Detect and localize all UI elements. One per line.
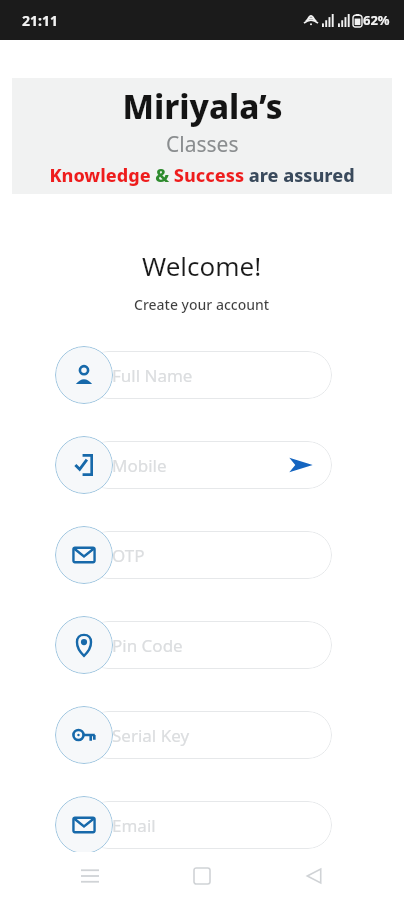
staticText: Miriyala’s	[122, 84, 283, 129]
button[interactable]: Full Name	[84, 351, 332, 399]
button[interactable]: Send OTP	[284, 448, 318, 482]
button[interactable]: Email	[55, 796, 113, 854]
button[interactable]: Mobile	[55, 436, 113, 494]
staticText: Serial Key	[112, 724, 190, 747]
staticText: 62%	[363, 11, 390, 29]
button[interactable]: Home	[180, 854, 224, 898]
button[interactable]: OTP	[55, 526, 113, 584]
button[interactable]: Serial Key	[55, 706, 113, 764]
staticText: Welcome!	[142, 248, 262, 283]
staticText: Pin Code	[112, 634, 183, 657]
staticText: OTP	[112, 544, 145, 567]
button[interactable]: Pin Code	[55, 616, 113, 674]
button[interactable]: Pin Code	[84, 621, 332, 669]
staticText: Knowledge & Success are assured	[49, 163, 355, 188]
button[interactable]: OTP	[84, 531, 332, 579]
button[interactable]: Serial Key	[84, 711, 332, 759]
staticText: Classes	[166, 130, 239, 159]
staticText: 21:11	[22, 11, 58, 30]
staticText: Mobile	[112, 454, 167, 477]
staticText: Create your account	[134, 295, 270, 314]
staticText: Email	[112, 814, 156, 837]
staticText: Full Name	[112, 364, 193, 387]
button[interactable]: Recent apps	[68, 854, 112, 898]
button[interactable]: Back	[292, 854, 336, 898]
button[interactable]: Mobile	[84, 441, 332, 489]
button[interactable]: Full Name	[55, 346, 113, 404]
button[interactable]: Email	[84, 801, 332, 849]
